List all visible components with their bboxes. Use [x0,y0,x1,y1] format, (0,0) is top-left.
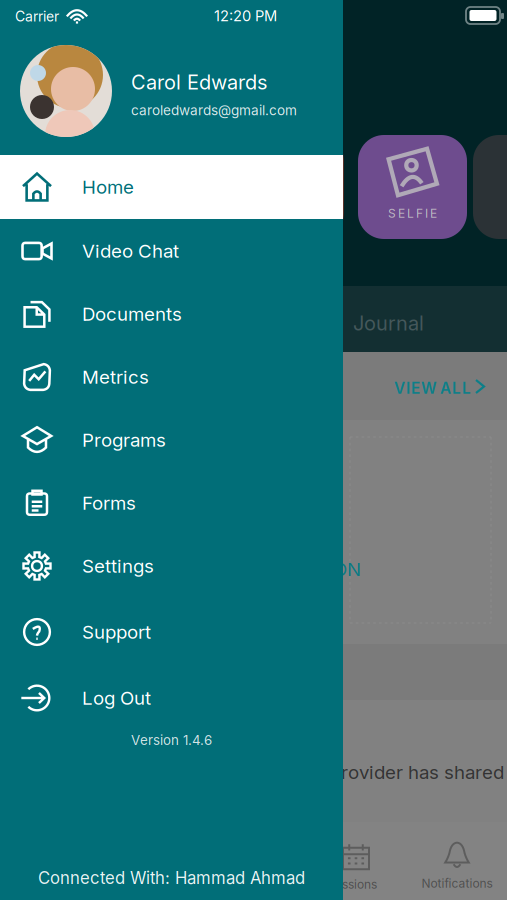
staticText: Metrics [82,366,149,388]
staticText: Programs [82,429,166,451]
button[interactable]: Forms [0,471,343,535]
staticText: Carol Edwards [131,70,267,94]
staticText: rovider has shared [341,761,504,784]
staticText: S E L F I E [388,206,437,221]
button[interactable]: Metrics [0,345,343,409]
button[interactable]: Documents [0,282,343,346]
button[interactable]: Settings [0,534,343,598]
staticText: Log Out [82,687,151,709]
staticText: Connected With: Hammad Ahmad [38,868,305,888]
staticText: Documents [82,303,182,325]
button[interactable]: Video Chat [0,219,343,283]
button[interactable]: essions [316,838,396,898]
staticText: Support [82,621,151,643]
button[interactable]: Notifications [402,836,507,896]
button[interactable]: Log Out [0,666,343,730]
staticText: Home [82,176,134,198]
staticText: Journal [353,311,424,335]
staticText: Notifications [421,876,492,891]
staticText: Forms [82,492,136,514]
staticText: 12:20 PM [214,7,277,25]
staticText: essions [335,877,377,892]
staticText: Version 1.4.6 [131,732,212,748]
staticText: V I E W A L L [394,379,471,398]
button[interactable]: Programs [0,408,343,472]
staticText: ON [333,558,361,581]
button[interactable]: Home [0,155,343,219]
staticText: Settings [82,555,154,577]
staticText: Video Chat [82,240,179,262]
button[interactable]: Support [0,600,343,664]
staticText: Carrier [15,8,59,25]
staticText: caroledwards@gmail.com [131,102,297,118]
